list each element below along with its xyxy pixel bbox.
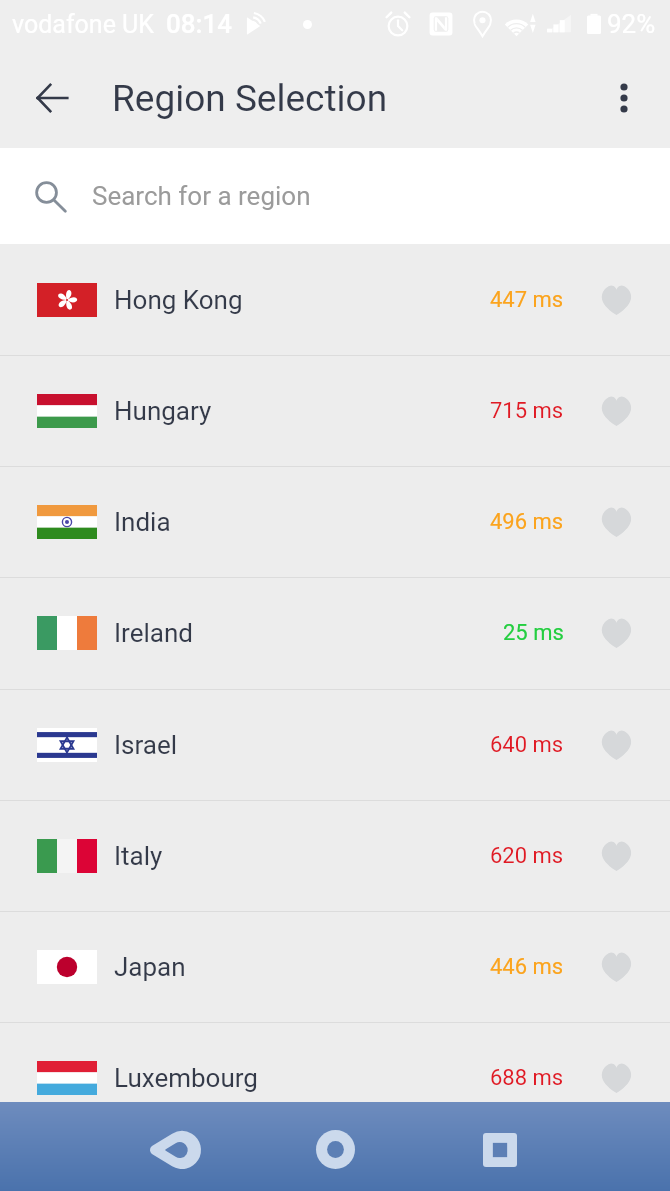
staticText: 08:14 bbox=[166, 9, 233, 39]
button[interactable]: Back bbox=[22, 68, 82, 128]
button[interactable]: Search for a region bbox=[0, 148, 670, 244]
staticText: Italy bbox=[114, 841, 163, 871]
staticText: Israel bbox=[114, 730, 178, 760]
button[interactable]: More options bbox=[596, 70, 652, 126]
staticText: 496 ms bbox=[490, 509, 564, 535]
button[interactable]: Favourite bbox=[588, 494, 644, 550]
button[interactable]: Japan bbox=[0, 911, 670, 1022]
button[interactable]: Favourite bbox=[588, 717, 644, 773]
staticText: Hungary bbox=[114, 396, 212, 426]
staticText: Hong Kong bbox=[114, 285, 243, 315]
staticText: Region Selection bbox=[112, 77, 388, 120]
button[interactable]: India bbox=[0, 466, 670, 577]
staticText: Ireland bbox=[114, 618, 193, 648]
staticText: 688 ms bbox=[490, 1065, 564, 1091]
button[interactable]: Favourite bbox=[588, 605, 644, 661]
button[interactable]: Hungary bbox=[0, 355, 670, 466]
button[interactable]: Favourite bbox=[588, 939, 644, 995]
button[interactable]: Home bbox=[281, 1102, 389, 1191]
staticText: 25 ms bbox=[503, 620, 564, 646]
button[interactable]: Favourite bbox=[588, 828, 644, 884]
staticText: vodafone UK bbox=[12, 10, 154, 39]
staticText: 446 ms bbox=[490, 954, 564, 980]
staticText: 447 ms bbox=[490, 287, 564, 313]
staticText: Japan bbox=[114, 952, 186, 982]
staticText: Luxembourg bbox=[114, 1063, 258, 1093]
button[interactable]: Recents bbox=[446, 1102, 554, 1191]
staticText: 620 ms bbox=[490, 843, 564, 869]
button[interactable]: Favourite bbox=[588, 1050, 644, 1106]
staticText: 640 ms bbox=[490, 732, 564, 758]
button[interactable]: Italy bbox=[0, 800, 670, 911]
staticText: 715 ms bbox=[490, 398, 564, 424]
button[interactable]: Favourite bbox=[588, 383, 644, 439]
staticText: Search for a region bbox=[92, 181, 311, 211]
staticText: 92% bbox=[607, 9, 656, 39]
button[interactable]: Back bbox=[121, 1102, 229, 1191]
button[interactable]: Ireland bbox=[0, 577, 670, 688]
button[interactable]: Favourite bbox=[588, 272, 644, 328]
button[interactable]: Hong Kong bbox=[0, 244, 670, 355]
button[interactable]: Israel bbox=[0, 689, 670, 800]
staticText: India bbox=[114, 507, 171, 537]
button[interactable]: Luxembourg bbox=[0, 1022, 670, 1133]
